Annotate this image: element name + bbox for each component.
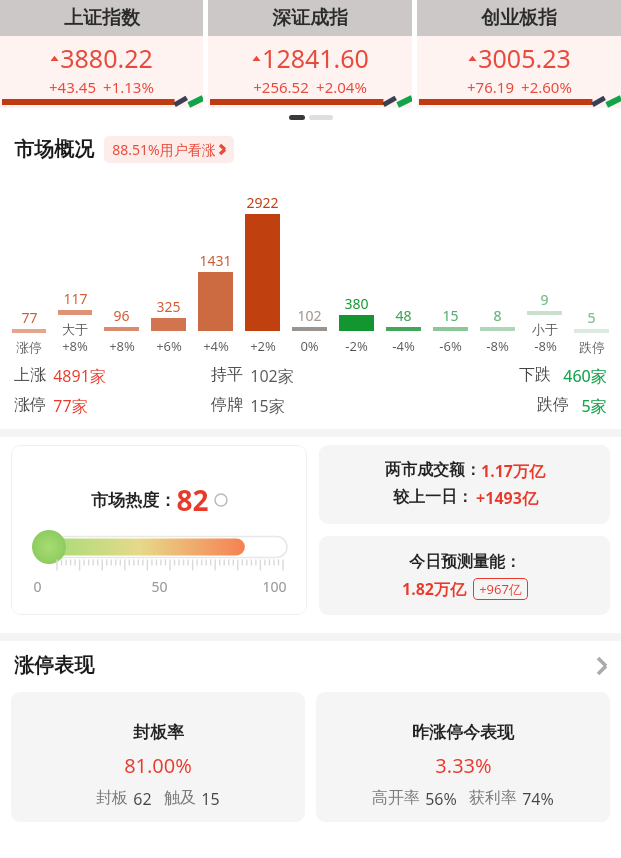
- staticText: 15: [201, 788, 220, 810]
- staticText: 市场热度：: [91, 490, 176, 511]
- button[interactable]: 市场热度：: [11, 445, 307, 615]
- button[interactable]: 创业板指: [417, 0, 621, 108]
- staticText: 5: [587, 308, 596, 327]
- staticText: 创业板指: [481, 6, 557, 30]
- staticText: 封板率: [133, 722, 184, 743]
- staticText: 56%: [425, 788, 457, 810]
- staticText: -8%: [486, 337, 509, 355]
- staticText: 74%: [522, 788, 554, 810]
- other: 帮助说明: [214, 493, 228, 507]
- button[interactable]: 封板率: [11, 692, 305, 822]
- staticText: 涨停: [16, 339, 42, 355]
- staticText: 2922: [246, 193, 279, 212]
- staticText: +2.60%: [521, 77, 572, 97]
- staticText: 325: [156, 297, 181, 316]
- staticText: +256.52: [253, 77, 309, 97]
- staticText: 跌停: [537, 395, 569, 415]
- staticText: 市场概况: [14, 137, 94, 162]
- staticText: 获利率: [469, 788, 517, 808]
- staticText: 1.82万亿: [402, 578, 466, 600]
- staticText: 较上一日：: [393, 487, 473, 507]
- staticText: 停牌: [211, 395, 243, 415]
- staticText: 两市成交额：: [385, 460, 481, 480]
- staticText: 触及: [164, 788, 196, 808]
- staticText: 封板: [96, 788, 128, 808]
- staticText: 48: [395, 306, 412, 325]
- staticText: 102家: [250, 365, 294, 387]
- staticText: 昨涨停今表现: [412, 722, 514, 743]
- staticText: 大于: [62, 321, 88, 337]
- staticText: 4891家: [53, 365, 106, 387]
- staticText: 1.17万亿: [481, 460, 545, 482]
- staticText: 跌停: [579, 339, 605, 355]
- staticText: +2%: [250, 337, 276, 355]
- staticText: -6%: [439, 337, 462, 355]
- staticText: +1493亿: [476, 487, 538, 509]
- staticText: 50: [151, 577, 168, 596]
- staticText: 88.51%用户看涨: [112, 140, 216, 159]
- staticText: 小于: [532, 321, 558, 337]
- staticText: 15: [442, 306, 459, 325]
- staticText: 77家: [53, 395, 88, 417]
- staticText: +1.13%: [103, 77, 154, 97]
- staticText: +76.19: [467, 77, 514, 97]
- staticText: 102: [297, 306, 322, 325]
- staticText: +4%: [203, 337, 229, 355]
- staticText: 高开率: [372, 788, 420, 808]
- staticText: 117: [63, 289, 88, 308]
- button[interactable]: 两市成交额：: [319, 445, 610, 524]
- staticText: 上证指数: [64, 6, 140, 30]
- staticText: +2.04%: [316, 77, 367, 97]
- staticText: 1431: [199, 251, 232, 270]
- staticText: 100: [262, 577, 287, 596]
- staticText: 0: [33, 577, 42, 596]
- staticText: 深证成指: [272, 6, 348, 30]
- staticText: +6%: [156, 337, 182, 355]
- staticText: 8: [493, 306, 502, 325]
- staticText: +8%: [109, 337, 135, 355]
- staticText: 3005.23: [478, 41, 571, 75]
- staticText: 460家: [563, 365, 607, 387]
- staticText: 9: [540, 290, 549, 309]
- staticText: 持平: [211, 365, 243, 385]
- button[interactable]: 今日预测量能：: [319, 536, 610, 615]
- staticText: -2%: [345, 337, 368, 355]
- staticText: 82: [176, 481, 209, 519]
- staticText: 今日预测量能：: [409, 552, 521, 572]
- staticText: 96: [113, 306, 130, 325]
- staticText: 12841.60: [262, 41, 369, 75]
- staticText: -8%: [534, 337, 557, 355]
- staticText: 380: [344, 294, 369, 313]
- staticText: 0%: [300, 337, 319, 355]
- button[interactable]: 88.51%用户看涨: [104, 136, 234, 163]
- staticText: 81.00%: [124, 752, 192, 779]
- staticText: 62: [133, 788, 152, 810]
- staticText: +8%: [62, 337, 88, 355]
- button[interactable]: 涨停表现: [0, 653, 621, 678]
- staticText: 77: [21, 308, 38, 327]
- staticText: 上涨: [14, 365, 46, 385]
- staticText: 下跌: [519, 365, 551, 385]
- staticText: 涨停表现: [14, 653, 94, 678]
- staticText: 15家: [250, 395, 285, 417]
- staticText: -4%: [392, 337, 415, 355]
- button[interactable]: 上证指数: [0, 0, 203, 108]
- staticText: 5家: [581, 395, 607, 417]
- button[interactable]: 深证成指: [208, 0, 412, 108]
- staticText: +967亿: [479, 580, 522, 598]
- staticText: +43.45: [49, 77, 96, 97]
- button[interactable]: 昨涨停今表现: [316, 692, 610, 822]
- staticText: 涨停: [14, 395, 46, 415]
- staticText: 3.33%: [435, 752, 492, 779]
- staticText: 3880.22: [60, 41, 153, 75]
